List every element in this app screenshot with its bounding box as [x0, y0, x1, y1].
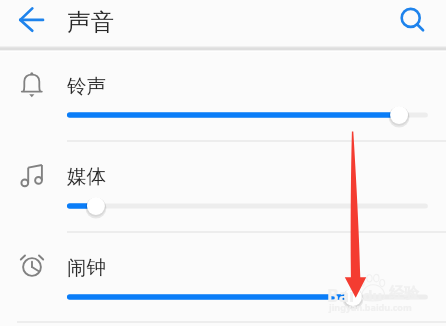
staticText: 声音 [67, 7, 114, 37]
button[interactable]: Back [8, 4, 48, 44]
button[interactable]: 媒体 [0, 153, 446, 232]
staticText: 媒体 [67, 164, 106, 189]
staticText: jingyan.baidu.com [329, 301, 412, 313]
staticText: du [363, 285, 383, 305]
button[interactable]: Search [391, 0, 431, 40]
staticText: Bai [327, 283, 355, 307]
staticText: 经验 [389, 284, 419, 303]
staticText: 铃声 [67, 74, 106, 99]
button[interactable]: 铃声 [0, 62, 446, 141]
staticText: 闹钟 [67, 255, 106, 280]
button[interactable]: 闹钟 [0, 243, 446, 322]
